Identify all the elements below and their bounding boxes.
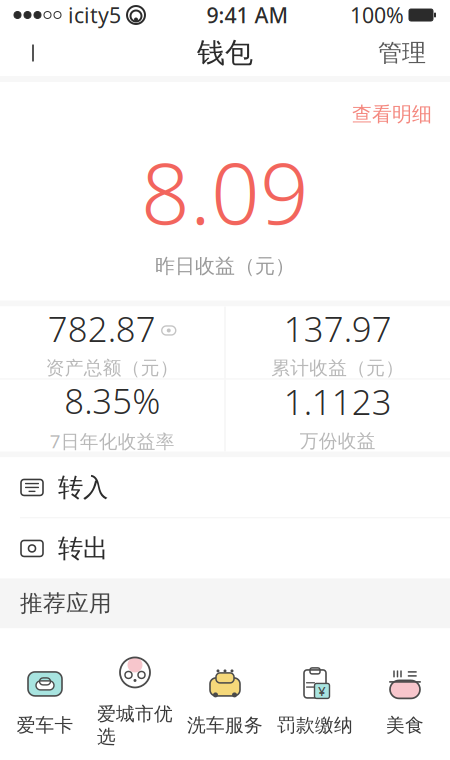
button[interactable]: ¥ [270, 658, 360, 743]
staticText: ¥ [318, 682, 326, 700]
staticText: 9:41 AM [206, 1, 288, 29]
button[interactable]: 管理 [364, 30, 440, 76]
staticText: 8.35% [64, 377, 160, 423]
staticText: 转出 [58, 533, 108, 564]
button[interactable]: 洗车服务 [180, 658, 270, 743]
staticText: 累计收益（元） [271, 356, 404, 379]
staticText: 钱包 [197, 36, 253, 70]
staticText: 782.87 [48, 305, 156, 351]
button[interactable]: 转出 [0, 518, 450, 578]
staticText: 1.1123 [284, 378, 392, 424]
staticText: 137.97 [284, 305, 392, 351]
staticText: 转入 [58, 472, 108, 503]
staticText: icity5 [68, 1, 121, 29]
staticText: 100% [350, 1, 404, 29]
staticText: 推荐应用 [20, 589, 112, 617]
staticText: 资产总额（元） [46, 356, 179, 379]
staticText: 罚款缴纳 [277, 714, 353, 737]
button[interactable]: 查看明细 [338, 96, 446, 133]
button[interactable]: 转入 [0, 457, 450, 517]
button[interactable]: 爱城市优选 [90, 646, 180, 754]
staticText: 7日年化收益率 [50, 429, 175, 453]
staticText: 美食 [386, 714, 424, 737]
staticText: 爱城市优选 [97, 702, 173, 748]
staticText: 管理 [378, 38, 426, 68]
button[interactable]: 美食 [360, 658, 450, 743]
button[interactable]: 爱车卡 [0, 658, 90, 743]
button[interactable]: 返回 [10, 30, 56, 76]
staticText: 万份收益 [300, 429, 376, 452]
staticText: 昨日收益（元） [155, 254, 295, 278]
staticText: 洗车服务 [187, 714, 263, 737]
staticText: 8.09 [141, 135, 309, 248]
staticText: 爱车卡 [16, 714, 73, 737]
staticText: 查看明细 [352, 102, 432, 127]
